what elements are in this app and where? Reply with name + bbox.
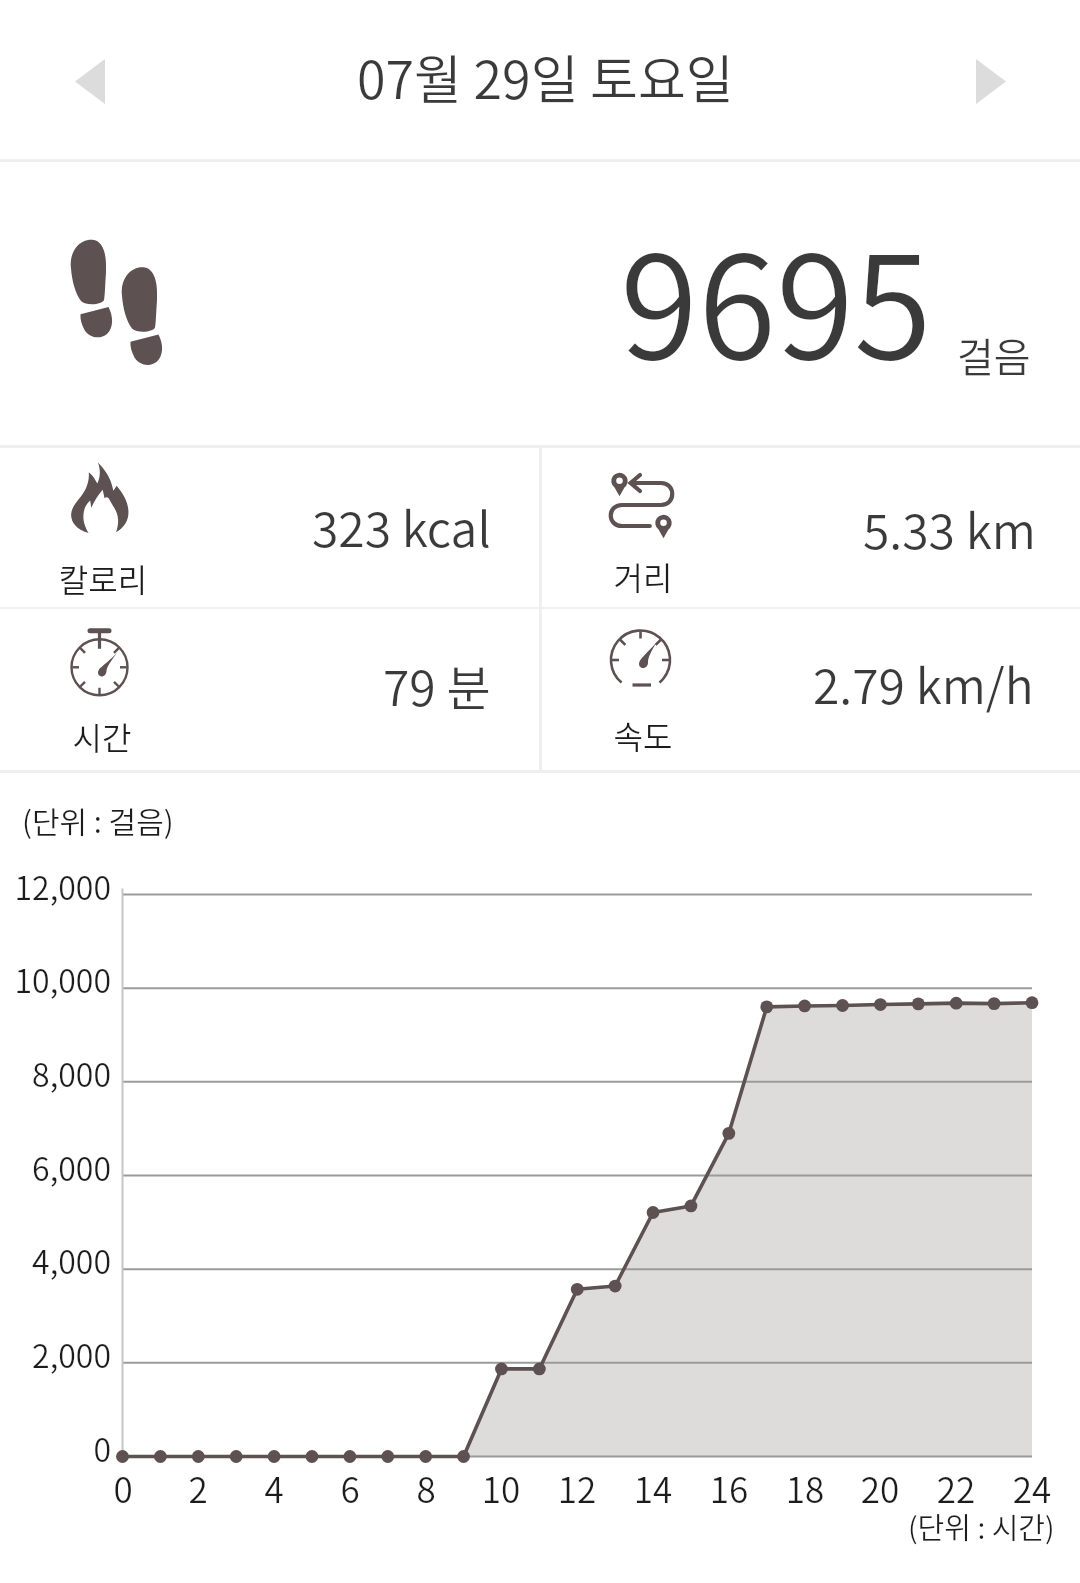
staticText: 5.33 km [863,493,1036,563]
staticText: 16 [689,1462,769,1513]
button[interactable]: 속도 [542,609,1080,770]
staticText: 칼로리 [13,555,193,601]
button[interactable]: Previous day [40,31,140,131]
staticText: 2.79 km/h [813,648,1034,718]
staticText: 4 [234,1462,314,1513]
staticText: 14 [613,1462,693,1513]
staticText: 323 kcal [312,491,491,561]
staticText: 12 [537,1462,617,1513]
button[interactable]: 9695 [0,162,1080,448]
staticText: 10,000 [0,956,111,1002]
staticText: 6,000 [0,1144,111,1190]
staticText: 속도 [553,712,733,758]
staticText: 07월 29일 토요일 [357,39,734,114]
staticText: (단위 : 시간) [908,1505,1055,1547]
staticText: 8 [386,1462,466,1513]
staticText: 2,000 [0,1331,111,1377]
staticText: 9695 [620,194,932,400]
staticText: 6 [310,1462,390,1513]
staticText: 20 [840,1462,920,1513]
button[interactable]: 거리 [542,448,1080,607]
staticText: 24 [992,1462,1072,1513]
staticText: 거리 [553,553,733,599]
staticText: 0 [0,1425,111,1471]
staticText: 8,000 [0,1050,111,1096]
staticText: 12,000 [0,863,111,909]
staticText: 2 [158,1462,238,1513]
staticText: 시간 [12,713,192,759]
staticText: 18 [765,1462,845,1513]
staticText: 22 [916,1462,996,1513]
staticText: 걸음 [957,326,1031,384]
staticText: (단위 : 걸음) [22,798,174,841]
button[interactable]: Next day [941,31,1041,131]
staticText: 0 [83,1462,163,1513]
staticText: 79 분 [383,650,491,720]
button[interactable]: 시간 [0,609,539,770]
staticText: 10 [461,1462,541,1513]
staticText: 4,000 [0,1237,111,1283]
button[interactable]: 칼로리 [0,448,539,607]
